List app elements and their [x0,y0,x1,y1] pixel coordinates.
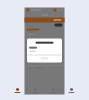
button[interactable]: Library [48,86,58,94]
button[interactable]: Confirm [40,57,48,59]
button[interactable]: Home [12,86,22,94]
button[interactable]: Profile [66,86,76,94]
button[interactable]: Search [30,86,40,94]
